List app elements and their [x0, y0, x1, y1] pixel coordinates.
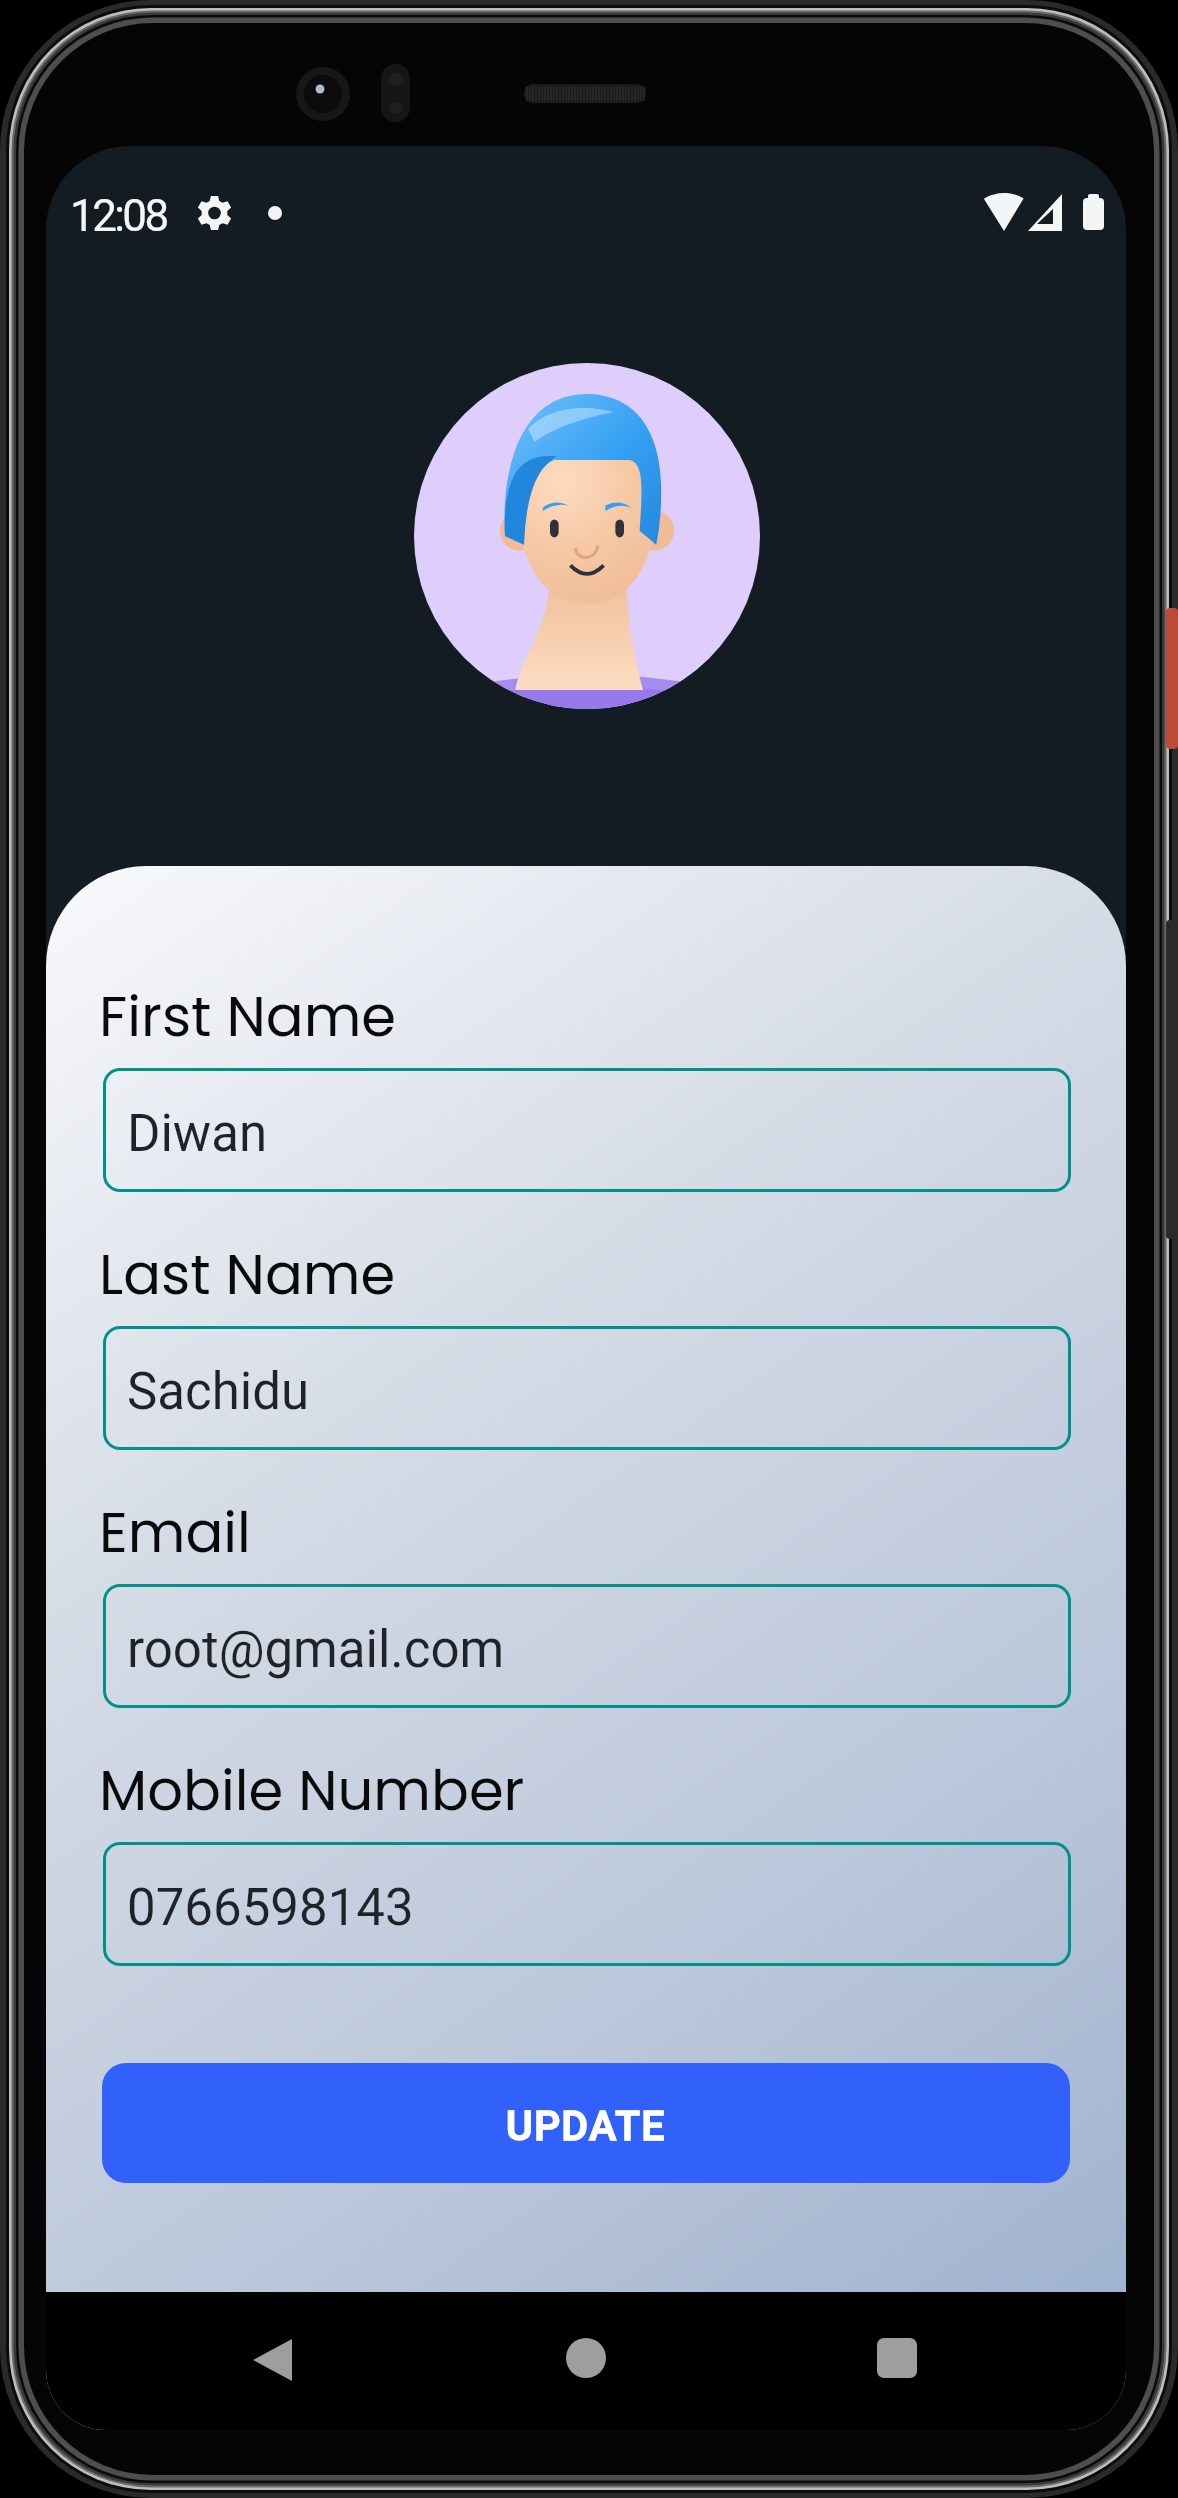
- button[interactable]: Profile picture: [414, 363, 760, 709]
- button[interactable]: UPDATE: [102, 2063, 1070, 2183]
- button[interactable]: Sachidu: [103, 1326, 1071, 1450]
- button[interactable]: Home: [566, 2338, 606, 2378]
- staticText: root@gmail.com: [127, 1620, 505, 1680]
- staticText: Email: [99, 1493, 251, 1571]
- staticText: Last Name: [99, 1235, 396, 1313]
- button[interactable]: Recent apps: [877, 2338, 917, 2378]
- button[interactable]: 0766598143: [103, 1842, 1071, 1966]
- button[interactable]: Diwan: [103, 1068, 1071, 1192]
- staticText: 0766598143: [127, 1878, 414, 1938]
- staticText: UPDATE: [506, 2102, 666, 2150]
- button[interactable]: root@gmail.com: [103, 1584, 1071, 1708]
- staticText: 12:08: [70, 190, 167, 242]
- staticText: Sachidu: [127, 1362, 310, 1422]
- staticText: Diwan: [127, 1104, 268, 1164]
- staticText: First Name: [99, 977, 397, 1055]
- staticText: Mobile Number: [99, 1751, 525, 1829]
- button[interactable]: Back: [251, 2336, 293, 2384]
